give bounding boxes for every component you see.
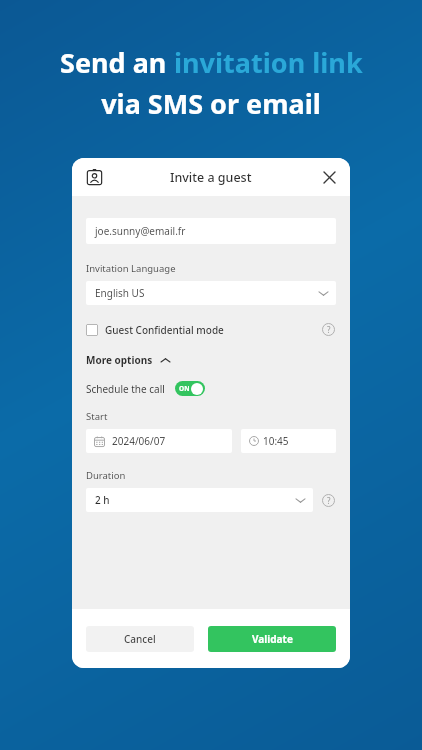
staticText: More options xyxy=(86,353,153,367)
button[interactable]: 2024/06/07 xyxy=(86,429,232,453)
button[interactable]: Guest xyxy=(82,165,106,189)
button[interactable]: 2 h xyxy=(86,488,313,512)
staticText: via SMS or email xyxy=(101,85,321,122)
button[interactable]: English US xyxy=(86,281,336,305)
button[interactable]: Cancel xyxy=(86,626,194,652)
staticText: 2024/06/07 xyxy=(112,434,166,448)
staticText: Start xyxy=(86,410,108,423)
staticText: English US xyxy=(95,286,145,300)
staticText: ON xyxy=(179,384,190,393)
staticText: ? xyxy=(327,324,331,335)
staticText: Invite a guest xyxy=(170,169,252,186)
button[interactable]: 10:45 xyxy=(241,429,336,453)
staticText: Validate xyxy=(252,632,293,646)
button[interactable]: Schedule the call toggle, on xyxy=(175,381,205,396)
staticText: Invitation Language xyxy=(86,262,176,275)
staticText: 2 h xyxy=(95,493,110,507)
staticText: Cancel xyxy=(124,632,156,646)
staticText: Schedule the call xyxy=(86,382,165,396)
button[interactable]: Help xyxy=(321,493,336,508)
button[interactable]: Validate xyxy=(208,626,336,652)
staticText: Guest Confidential mode xyxy=(105,323,224,337)
button[interactable]: Guest Confidential mode xyxy=(86,323,224,337)
button[interactable]: Close xyxy=(318,166,340,188)
staticText: ? xyxy=(327,495,331,506)
staticText: Send an xyxy=(60,44,174,81)
button[interactable]: joe.sunny@email.fr xyxy=(86,218,336,244)
button[interactable]: More options xyxy=(86,353,170,367)
staticText: Duration xyxy=(86,469,126,482)
button[interactable]: Help xyxy=(321,322,336,337)
staticText: invitation link xyxy=(174,44,363,81)
staticText: 10:45 xyxy=(263,434,289,448)
staticText: joe.sunny@email.fr xyxy=(95,224,186,238)
